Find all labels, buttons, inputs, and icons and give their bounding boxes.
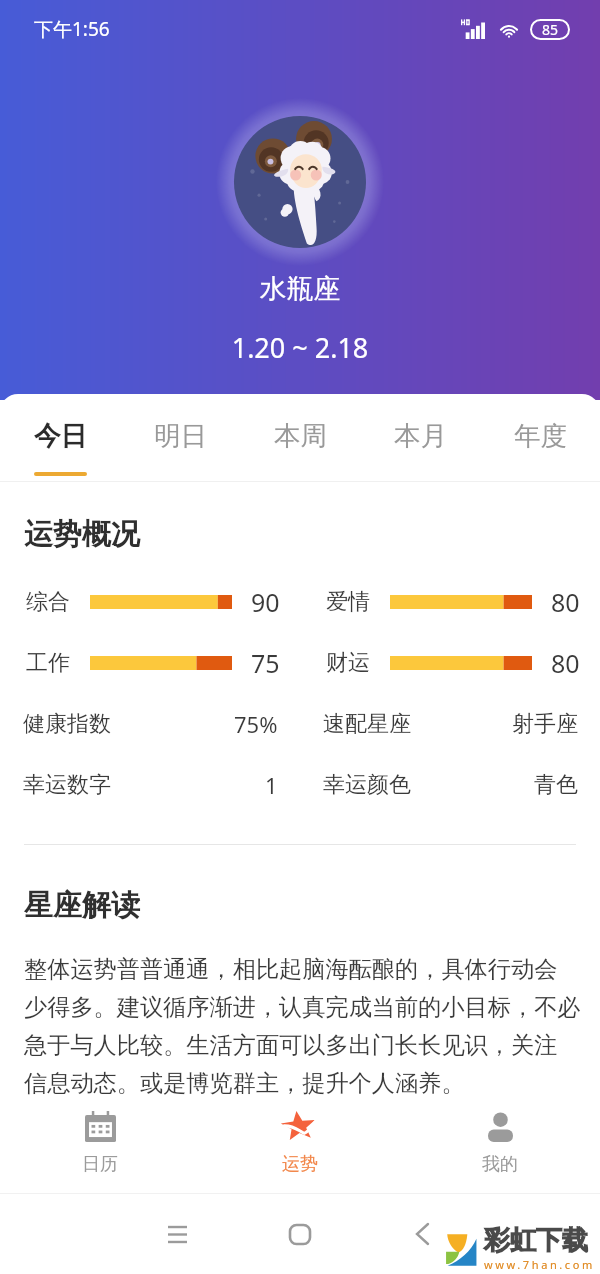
staticText: 明日 xyxy=(154,419,207,452)
staticText: 日历 xyxy=(82,1153,118,1176)
staticText: 财运 xyxy=(326,649,370,677)
staticText: www.7han.com xyxy=(484,1257,595,1272)
staticText: 爱情 xyxy=(326,588,370,616)
staticText: 健康指数 xyxy=(23,710,111,738)
staticText: 80 xyxy=(551,585,580,619)
staticText: 运势 xyxy=(282,1153,318,1176)
button[interactable]: 日历 xyxy=(0,1097,200,1189)
staticText: 1 xyxy=(265,770,278,800)
staticText: 75 xyxy=(251,646,280,680)
staticText: 青色 xyxy=(534,771,578,799)
staticText: 1.20 ~ 2.18 xyxy=(0,329,600,366)
staticText: 90 xyxy=(251,585,280,619)
staticText: 年度 xyxy=(514,419,567,452)
staticText: 今日 xyxy=(34,419,87,452)
staticText: 水瓶座 xyxy=(0,272,600,306)
staticText: 综合 xyxy=(26,588,70,616)
button[interactable]: Home xyxy=(238,1194,361,1274)
staticText: 下午1:56 xyxy=(34,16,110,42)
staticText: 本周 xyxy=(274,419,327,452)
staticText: 工作 xyxy=(26,649,70,677)
staticText: 整体运势普普通通，相比起脑海酝酿的，具体行动会 少得多。建议循序渐进，认真完成当… xyxy=(24,955,581,1098)
staticText: 我的 xyxy=(482,1153,518,1176)
staticText: 运势概况 xyxy=(24,516,140,553)
button[interactable]: 今日 xyxy=(0,394,120,481)
button[interactable]: 运势 xyxy=(200,1097,400,1189)
button[interactable]: Back xyxy=(361,1194,484,1274)
staticText: 幸运颜色 xyxy=(323,771,411,799)
staticText: 射手座 xyxy=(512,710,578,738)
staticText: 80 xyxy=(551,646,580,680)
button[interactable]: 本月 xyxy=(360,394,480,481)
staticText: 速配星座 xyxy=(323,710,411,738)
staticText: 75% xyxy=(234,709,278,739)
button[interactable]: 我的 xyxy=(400,1097,600,1189)
button[interactable]: 明日 xyxy=(120,394,240,481)
staticText: 本月 xyxy=(394,419,447,452)
button[interactable]: Recent apps xyxy=(116,1194,238,1274)
button[interactable]: 年度 xyxy=(480,394,600,481)
staticText: 85 xyxy=(542,20,559,39)
staticText: 幸运数字 xyxy=(23,771,111,799)
button[interactable]: 本周 xyxy=(240,394,360,481)
staticText: 星座解读 xyxy=(24,887,140,924)
staticText: 彩虹下载 xyxy=(484,1224,588,1257)
